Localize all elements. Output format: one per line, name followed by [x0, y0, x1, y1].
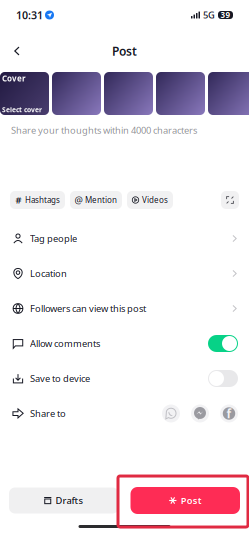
button[interactable]: Share to: [0, 396, 249, 431]
button[interactable]: Share to Messenger: [191, 404, 209, 422]
button[interactable]: Share to WhatsApp: [162, 404, 180, 422]
staticText: Mention: [85, 195, 117, 205]
staticText: Location: [30, 267, 67, 280]
button[interactable]: Drafts: [9, 487, 118, 513]
button[interactable]: Cover frame: [52, 72, 101, 115]
button[interactable]: #: [10, 191, 65, 209]
button[interactable]: Tag people: [0, 221, 249, 256]
staticText: Select cover: [2, 105, 42, 114]
staticText: Tag people: [30, 232, 77, 245]
staticText: Post: [181, 494, 202, 507]
button[interactable]: Cover frame: [156, 72, 205, 115]
staticText: f: [226, 405, 231, 421]
staticText: 5G: [203, 9, 215, 21]
staticText: Save to device: [30, 372, 90, 385]
staticText: @: [74, 194, 82, 206]
staticText: Post: [112, 43, 137, 59]
button[interactable]: Location: [0, 256, 249, 291]
staticText: Allow comments: [30, 337, 100, 350]
button[interactable]: Cover frame: [208, 72, 249, 115]
button[interactable]: Cover frame: [0, 72, 49, 115]
staticText: Share your thoughts within 4000 characte…: [11, 124, 197, 136]
staticText: 39: [220, 10, 230, 20]
button[interactable]: Back: [6, 40, 28, 62]
staticText: Followers can view this post: [30, 302, 146, 315]
button[interactable]: Expand editor: [221, 191, 239, 209]
staticText: Videos: [142, 195, 168, 205]
button[interactable]: Allow comments: [0, 326, 249, 361]
staticText: Share to: [30, 407, 66, 420]
button[interactable]: Videos: [127, 191, 173, 209]
staticText: Hashtags: [25, 195, 60, 205]
button[interactable]: Cover frame: [104, 72, 153, 115]
staticText: Drafts: [55, 494, 83, 507]
button[interactable]: Post: [130, 487, 240, 514]
staticText: 10:31: [16, 8, 43, 22]
staticText: Cover: [2, 73, 26, 84]
button[interactable]: Share to Facebook: [220, 404, 238, 422]
button[interactable]: Followers can view this post: [0, 291, 249, 326]
button[interactable]: Save to device: [0, 361, 249, 396]
staticText: #: [15, 194, 21, 206]
button[interactable]: @: [70, 191, 122, 209]
